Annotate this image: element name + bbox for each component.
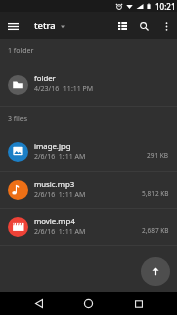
staticText: 2/6/16 1:11 AM [34,190,86,200]
button[interactable]: View mode [112,16,132,36]
button[interactable]: image.jpg [0,134,177,172]
button[interactable]: Home [77,292,100,315]
staticText: 3 files [8,114,28,124]
staticText: tetra [34,19,56,32]
button[interactable]: Open navigation drawer [3,16,23,36]
button[interactable]: music.mp3 [0,172,177,209]
staticText: folder [34,73,56,84]
button[interactable]: Recents [127,292,150,315]
staticText: 291 KB [147,151,169,160]
button[interactable]: movie.mp4 [0,209,177,246]
staticText: 10:21 [155,1,176,12]
staticText: music.mp3 [34,179,75,190]
staticText: movie.mp4 [34,216,75,227]
button[interactable]: Search [134,16,154,36]
button[interactable]: Back [27,292,50,315]
button[interactable]: More options [156,16,176,36]
button[interactable]: folder [0,67,177,107]
staticText: 2,687 KB [142,226,169,235]
button[interactable]: tetra [33,15,66,36]
staticText: 1 folder [8,46,34,56]
staticText: image.jpg [34,141,71,152]
button[interactable]: Scroll to top [141,257,170,286]
staticText: 4/23/16 11:11 PM [34,84,94,94]
staticText: 5,812 KB [142,189,169,198]
staticText: 2/6/16 1:11 AM [34,227,86,237]
staticText: 2/6/16 1:11 AM [34,152,86,162]
